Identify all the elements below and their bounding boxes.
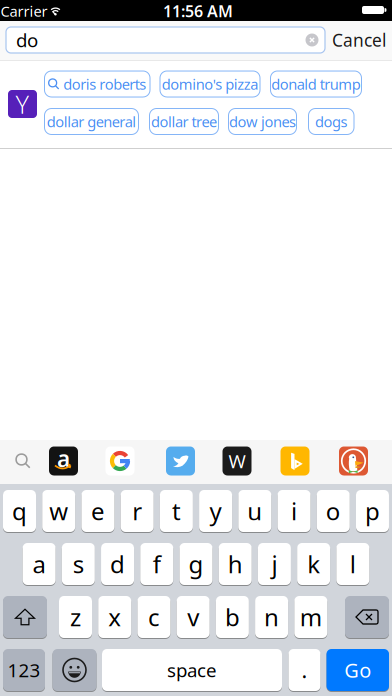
- staticText: domino's pizza: [162, 74, 258, 94]
- button[interactable]: s: [62, 542, 95, 585]
- staticText: k: [307, 548, 320, 580]
- button[interactable]: v: [177, 595, 210, 638]
- button[interactable]: Y: [8, 90, 37, 118]
- button[interactable]: dollar general: [44, 108, 138, 134]
- button[interactable]: y: [199, 489, 232, 532]
- button[interactable]: f: [140, 542, 173, 585]
- button[interactable]: o: [317, 489, 350, 532]
- button[interactable]: h: [219, 542, 252, 585]
- staticText: W: [228, 449, 245, 473]
- button[interactable]: x: [98, 595, 131, 638]
- button[interactable]: u: [238, 489, 271, 532]
- staticText: v: [187, 601, 199, 633]
- staticText: l: [350, 548, 356, 580]
- staticText: x: [108, 601, 121, 633]
- staticText: j: [271, 548, 277, 580]
- button[interactable]: W: [222, 446, 251, 475]
- staticText: do: [16, 28, 38, 52]
- button[interactable]: [345, 595, 389, 638]
- staticText: dogs: [315, 112, 347, 131]
- button[interactable]: do: [6, 27, 325, 53]
- staticText: dow jones: [229, 112, 296, 131]
- staticText: space: [167, 658, 217, 682]
- staticText: .: [301, 656, 307, 684]
- staticText: q: [12, 495, 27, 527]
- staticText: doris roberts: [63, 74, 146, 94]
- button[interactable]: donald trump: [270, 71, 361, 97]
- staticText: i: [291, 495, 297, 527]
- staticText: h: [228, 548, 243, 580]
- staticText: y: [210, 495, 222, 527]
- staticText: Go: [344, 657, 371, 683]
- button[interactable]: p: [356, 489, 389, 532]
- button[interactable]: [339, 446, 368, 475]
- staticText: r: [132, 495, 142, 527]
- button[interactable]: i: [277, 489, 310, 532]
- staticText: a: [33, 548, 46, 580]
- staticText: dollar general: [47, 112, 136, 131]
- button[interactable]: w: [42, 489, 75, 532]
- button[interactable]: m: [294, 595, 327, 638]
- staticText: s: [73, 548, 84, 580]
- staticText: t: [172, 495, 181, 527]
- button[interactable]: Go: [326, 648, 389, 691]
- staticText: o: [326, 495, 341, 527]
- button[interactable]: t: [160, 489, 193, 532]
- staticText: Y: [15, 87, 29, 121]
- staticText: d: [110, 548, 125, 580]
- button[interactable]: space: [102, 648, 282, 691]
- staticText: p: [365, 495, 380, 527]
- staticText: m: [300, 601, 322, 633]
- button[interactable]: l: [336, 542, 369, 585]
- button[interactable]: doris roberts: [44, 71, 150, 97]
- button[interactable]: k: [297, 542, 330, 585]
- button[interactable]: .: [288, 648, 320, 691]
- staticText: c: [148, 601, 160, 633]
- button[interactable]: c: [137, 595, 170, 638]
- button[interactable]: e: [81, 489, 114, 532]
- button[interactable]: Cancel: [332, 28, 386, 51]
- staticText: 123: [7, 658, 40, 682]
- staticText: u: [247, 495, 262, 527]
- button[interactable]: [3, 595, 47, 638]
- button[interactable]: r: [121, 489, 154, 532]
- staticText: Cancel: [332, 28, 386, 51]
- button[interactable]: [15, 453, 30, 468]
- staticText: g: [188, 548, 203, 580]
- button[interactable]: b: [216, 595, 249, 638]
- staticText: b: [225, 601, 240, 633]
- button[interactable]: d: [101, 542, 134, 585]
- staticText: 11:56 AM: [163, 0, 233, 22]
- button[interactable]: q: [3, 489, 36, 532]
- button[interactable]: n: [255, 595, 288, 638]
- staticText: a: [57, 443, 70, 473]
- staticText: Carrier: [0, 1, 47, 21]
- button[interactable]: [166, 446, 195, 475]
- button[interactable]: domino's pizza: [160, 71, 260, 97]
- button[interactable]: [105, 446, 134, 475]
- button[interactable]: [280, 446, 309, 475]
- button[interactable]: [305, 33, 318, 46]
- button[interactable]: dollar tree: [149, 108, 218, 134]
- staticText: f: [153, 548, 161, 580]
- button[interactable]: 123: [3, 648, 45, 691]
- button[interactable]: a: [23, 542, 56, 585]
- staticText: n: [264, 601, 279, 633]
- button[interactable]: dow jones: [228, 108, 296, 134]
- staticText: w: [49, 495, 68, 527]
- staticText: e: [91, 495, 105, 527]
- staticText: dollar tree: [151, 112, 217, 131]
- button[interactable]: z: [59, 595, 92, 638]
- button[interactable]: a: [49, 446, 78, 475]
- button[interactable]: [52, 648, 96, 691]
- staticText: z: [70, 601, 81, 633]
- button[interactable]: dogs: [308, 108, 354, 134]
- button[interactable]: j: [258, 542, 291, 585]
- staticText: donald trump: [271, 74, 361, 94]
- button[interactable]: g: [179, 542, 212, 585]
